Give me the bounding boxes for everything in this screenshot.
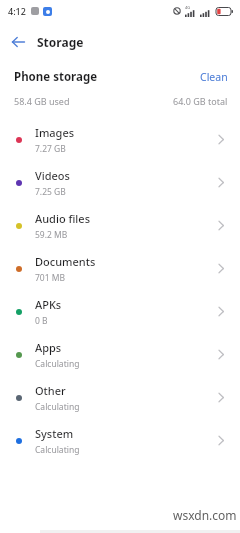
staticText: Phone storage	[14, 69, 98, 85]
staticText: Storage	[37, 34, 84, 50]
staticText: wsxdn.com	[173, 507, 237, 523]
staticText: Audio files	[35, 211, 90, 226]
button[interactable]: Audio files	[0, 204, 240, 247]
staticText: Documents	[35, 254, 96, 269]
button[interactable]: Documents	[0, 247, 240, 290]
staticText: Calculating	[35, 401, 80, 413]
staticText: System	[35, 426, 74, 441]
staticText: 64.0 GB total	[173, 95, 228, 107]
button[interactable]: System	[0, 419, 240, 462]
button[interactable]: Other	[0, 376, 240, 419]
button[interactable]: Videos	[0, 161, 240, 204]
staticText: Calculating	[35, 358, 80, 370]
staticText: Videos	[35, 168, 70, 183]
button[interactable]	[0, 27, 36, 56]
staticText: 59.2 MB	[35, 229, 68, 241]
staticText: Other	[35, 383, 66, 398]
button[interactable]: Clean	[200, 70, 228, 84]
staticText: 0 B	[35, 315, 48, 327]
staticText: 4:12	[8, 5, 26, 17]
staticText: Images	[35, 125, 75, 140]
staticText: 7.27 GB	[35, 143, 66, 155]
staticText: APKs	[35, 297, 62, 312]
staticText: 58.4 GB used	[14, 95, 70, 107]
staticText: Apps	[35, 340, 62, 355]
staticText: 4G	[185, 5, 191, 10]
staticText: 701 MB	[35, 272, 66, 284]
button[interactable]: Images	[0, 118, 240, 161]
staticText: 7.25 GB	[35, 186, 66, 198]
button[interactable]: Apps	[0, 333, 240, 376]
staticText: Calculating	[35, 444, 80, 456]
button[interactable]: APKs	[0, 290, 240, 333]
